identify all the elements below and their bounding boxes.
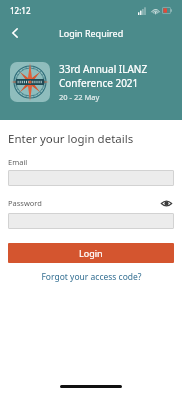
staticText: 20 - 22 May: [59, 92, 100, 102]
button[interactable]: Login: [8, 243, 174, 263]
staticText: Enter your login details: [8, 131, 134, 147]
button[interactable]: [8, 170, 174, 186]
button[interactable]: Show password: [158, 195, 174, 211]
staticText: Login Required: [59, 27, 124, 39]
button[interactable]: Forgot your access code?: [8, 271, 174, 283]
button[interactable]: [8, 213, 174, 229]
staticText: Conference 2021: [59, 76, 139, 90]
staticText: Login: [79, 247, 103, 259]
staticText: Password: [8, 198, 42, 208]
staticText: Email: [8, 157, 28, 167]
staticText: Forgot your access code?: [41, 271, 142, 283]
staticText: 12:12: [10, 5, 31, 16]
staticText: 33rd Annual ILANZ: [59, 62, 148, 76]
button[interactable]: Back: [0, 20, 30, 46]
